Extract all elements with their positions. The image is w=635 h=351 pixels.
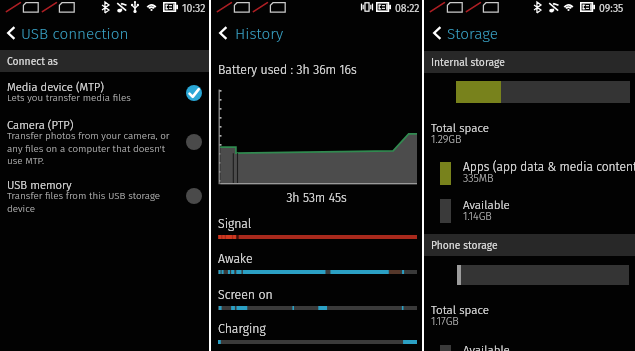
staticText: Storage xyxy=(447,25,498,43)
staticText: USB memory xyxy=(7,178,72,192)
button[interactable]: Back xyxy=(429,21,447,45)
staticText: 09:35 xyxy=(599,2,624,15)
staticText: Apps (app data & media content) xyxy=(463,160,635,174)
staticText: Media device (MTP) xyxy=(7,80,104,94)
staticText: Internal storage xyxy=(431,56,505,68)
staticText: Charging xyxy=(218,321,266,336)
staticText: Awake xyxy=(218,251,253,266)
button[interactable]: Back xyxy=(3,21,21,45)
staticText: 1.17GB xyxy=(431,315,459,328)
staticText: Transfer files from this USB storage dev… xyxy=(7,190,182,214)
staticText: Phone storage xyxy=(431,239,498,251)
button[interactable]: Back xyxy=(215,21,233,45)
staticText: 1.14GB xyxy=(463,210,492,223)
staticText: 08:22 xyxy=(395,2,420,15)
staticText: 1.29GB xyxy=(431,133,462,146)
staticText: Available xyxy=(463,198,510,212)
staticText: Battery used : 3h 36m 16s xyxy=(218,62,357,77)
staticText: Camera (PTP) xyxy=(7,118,74,132)
staticText: Total space xyxy=(431,121,489,135)
staticText: 335MB xyxy=(463,172,494,185)
staticText: History xyxy=(235,25,284,43)
staticText: Signal xyxy=(218,216,252,231)
staticText: 3h 53m 45s xyxy=(211,190,422,205)
staticText: Connect as xyxy=(7,55,58,67)
staticText: Total space xyxy=(431,303,489,317)
staticText: USB connection xyxy=(21,25,129,43)
staticText: Transfer photos from your camera, or any… xyxy=(7,130,182,166)
staticText: Lets you transfer media files xyxy=(7,92,182,104)
staticText: Screen on xyxy=(218,287,273,302)
staticText: 10:32 xyxy=(182,2,206,15)
staticText: Available xyxy=(463,343,510,351)
